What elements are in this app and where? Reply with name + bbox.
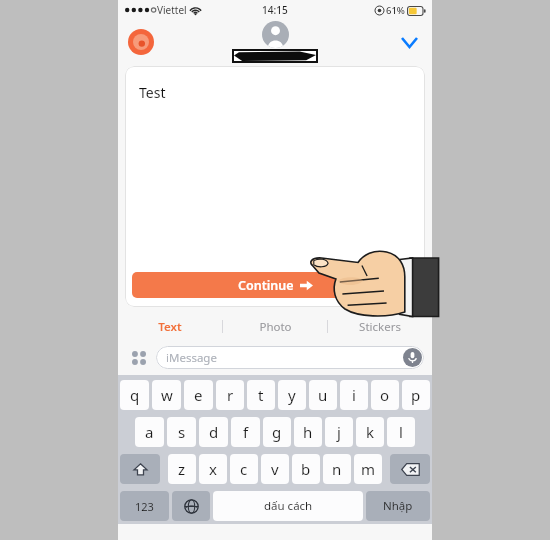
staticText: h — [303, 422, 313, 442]
staticText: Stickers — [359, 319, 401, 335]
button[interactable]: Dictate — [403, 348, 422, 367]
button[interactable]: l — [387, 417, 415, 447]
button[interactable]: Change keyboard — [172, 491, 210, 521]
staticText: iMessage — [166, 350, 217, 366]
staticText: z — [178, 459, 186, 479]
staticText: 123 — [135, 499, 154, 514]
staticText: f — [243, 422, 249, 442]
staticText: v — [271, 459, 279, 479]
staticText: r — [227, 385, 234, 405]
button[interactable]: f — [231, 417, 260, 447]
staticText: c — [240, 459, 248, 479]
button[interactable]: u — [309, 380, 337, 410]
button[interactable]: Photo — [223, 313, 327, 340]
button[interactable]: m — [354, 454, 382, 484]
button[interactable]: h — [294, 417, 322, 447]
staticText: b — [301, 459, 311, 479]
staticText: 61% — [386, 4, 405, 17]
staticText: Nhập — [383, 498, 413, 514]
button[interactable]: i — [340, 380, 368, 410]
button[interactable]: v — [261, 454, 289, 484]
button[interactable]: k — [356, 417, 384, 447]
button[interactable]: d — [199, 417, 228, 447]
staticText: n — [332, 459, 342, 479]
staticText: Text — [158, 319, 182, 335]
button[interactable]: t — [247, 380, 275, 410]
button[interactable]: b — [292, 454, 320, 484]
staticText: 14:15 — [262, 3, 288, 17]
button[interactable]: App icon — [128, 29, 154, 55]
staticText: t — [258, 385, 264, 405]
staticText: i — [352, 385, 356, 405]
button[interactable]: a — [135, 417, 164, 447]
button[interactable]: Continue — [132, 272, 418, 298]
button[interactable]: dấu cách — [213, 491, 363, 521]
staticText: e — [194, 385, 203, 405]
button[interactable]: x — [199, 454, 227, 484]
button[interactable]: 123 — [120, 491, 169, 521]
staticText: l — [399, 422, 403, 442]
staticText: k — [366, 422, 375, 442]
staticText: s — [178, 422, 186, 442]
button[interactable]: j — [325, 417, 353, 447]
button[interactable]: Nhập — [366, 491, 430, 521]
staticText: p — [411, 385, 421, 405]
staticText: m — [361, 459, 376, 479]
button[interactable]: q — [120, 380, 149, 410]
button[interactable]: Stickers — [328, 313, 432, 340]
staticText: Continue — [238, 277, 294, 294]
staticText: y — [288, 385, 296, 405]
button[interactable]: c — [230, 454, 258, 484]
button[interactable]: Backspace — [390, 454, 430, 484]
staticText: g — [272, 422, 282, 442]
staticText: d — [209, 422, 219, 442]
button[interactable]: Contact avatar — [262, 21, 289, 48]
staticText: Test — [139, 83, 166, 102]
button[interactable]: y — [278, 380, 306, 410]
button[interactable]: p — [402, 380, 430, 410]
button[interactable]: n — [323, 454, 351, 484]
button[interactable]: iMessage — [156, 346, 424, 369]
staticText: j — [337, 422, 341, 442]
button[interactable]: s — [167, 417, 196, 447]
button[interactable]: g — [263, 417, 291, 447]
button[interactable]: Apps — [126, 345, 152, 371]
staticText: q — [130, 385, 140, 405]
staticText: a — [145, 422, 154, 442]
staticText: Photo — [259, 319, 292, 335]
staticText: Viettel — [157, 3, 187, 17]
staticText: w — [161, 385, 173, 405]
button[interactable]: Text — [118, 313, 222, 340]
button[interactable]: r — [216, 380, 244, 410]
button[interactable]: z — [168, 454, 196, 484]
button[interactable]: Collapse — [396, 29, 422, 55]
staticText: u — [318, 385, 328, 405]
staticText: dấu cách — [264, 498, 313, 514]
staticText: x — [209, 459, 217, 479]
button[interactable]: w — [152, 380, 181, 410]
staticText: o — [380, 385, 390, 405]
button[interactable]: o — [371, 380, 399, 410]
button[interactable]: Shift — [120, 454, 160, 484]
button[interactable]: e — [184, 380, 213, 410]
